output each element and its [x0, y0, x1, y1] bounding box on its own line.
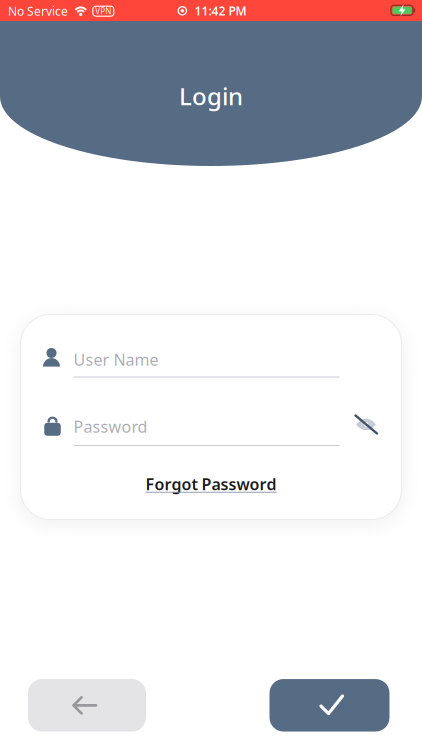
staticText: User Name — [73, 349, 158, 370]
button[interactable]: Back — [28, 679, 146, 731]
staticText: 11:42 PM — [194, 3, 246, 19]
staticText: Password — [73, 416, 147, 437]
staticText: No Service — [8, 3, 68, 19]
staticText: Login — [179, 80, 243, 112]
button[interactable]: Forgot Password — [145, 473, 276, 495]
button[interactable]: Show password — [351, 409, 381, 439]
staticText: VPN — [95, 6, 111, 16]
button[interactable]: Confirm — [269, 679, 389, 731]
staticText: Forgot Password — [145, 473, 276, 495]
